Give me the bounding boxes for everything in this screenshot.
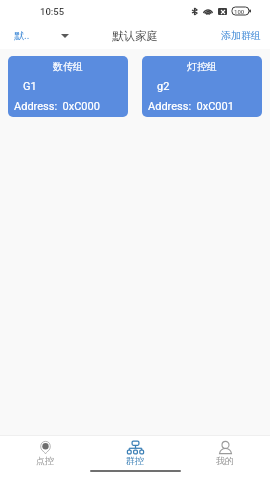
staticText: Address: 0xC001 <box>148 100 234 113</box>
staticText: 10:55 <box>40 6 65 17</box>
staticText: 默.. <box>14 29 30 42</box>
button[interactable]: 我的 <box>180 436 270 466</box>
button[interactable]: 数传组 <box>8 56 128 117</box>
staticText: 100 <box>234 8 245 15</box>
button[interactable]: 群控 <box>90 436 180 466</box>
staticText: 数传组 <box>53 60 83 73</box>
staticText: 灯控组 <box>187 60 217 73</box>
staticText: 群控 <box>126 455 144 466</box>
staticText: 我的 <box>216 455 234 466</box>
staticText: Address: 0xC000 <box>14 100 100 113</box>
button[interactable]: 点控 <box>0 436 90 466</box>
button[interactable]: 灯控组 <box>142 56 262 117</box>
button[interactable]: 默.. <box>0 25 77 46</box>
staticText: 点控 <box>36 455 54 466</box>
other: Select home <box>61 34 69 38</box>
button[interactable]: 添加群组 <box>213 25 270 46</box>
staticText: G1 <box>23 80 37 93</box>
staticText: 默认家庭 <box>112 29 158 43</box>
staticText: g2 <box>157 80 170 93</box>
